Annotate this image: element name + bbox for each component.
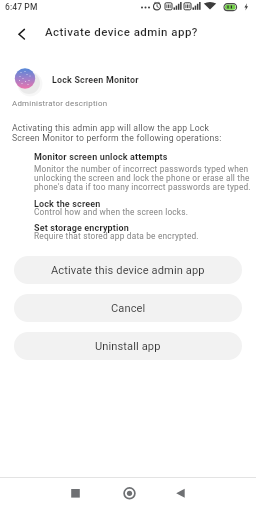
- staticText: Cancel: [111, 302, 146, 315]
- button[interactable]: [119, 483, 140, 504]
- staticText: Set storage encryption: [34, 223, 129, 234]
- button[interactable]: Activate this device admin app: [14, 256, 242, 284]
- staticText: Activate this device admin app: [51, 264, 205, 277]
- button[interactable]: [65, 483, 86, 504]
- staticText: Require that stored app data be encrypte…: [34, 231, 199, 241]
- staticText: Control how and when the screen locks.: [34, 207, 189, 217]
- staticText: Lock Screen Monitor: [52, 75, 139, 85]
- button[interactable]: Cancel: [14, 294, 242, 322]
- button[interactable]: Uninstall app: [14, 332, 242, 360]
- staticText: Administrator description: [12, 99, 108, 108]
- staticText: Uninstall app: [95, 340, 161, 353]
- staticText: Lock the screen: [34, 199, 101, 210]
- staticText: Screen Monitor to perform the following …: [12, 133, 222, 143]
- staticText: 6:47 PM: [5, 2, 38, 12]
- staticText: unlocking the screen and lock the phone …: [34, 173, 250, 183]
- staticText: Activate device admin app?: [45, 25, 198, 38]
- staticText: Monitor the number of incorrect password…: [34, 164, 249, 174]
- button[interactable]: [170, 483, 191, 504]
- staticText: phone's data if too many incorrect passw…: [34, 182, 251, 192]
- button[interactable]: [6, 24, 30, 48]
- staticText: Monitor screen unlock attempts: [34, 152, 168, 163]
- button[interactable]: [12, 65, 46, 99]
- staticText: Activating this admin app will allow the…: [12, 123, 210, 133]
